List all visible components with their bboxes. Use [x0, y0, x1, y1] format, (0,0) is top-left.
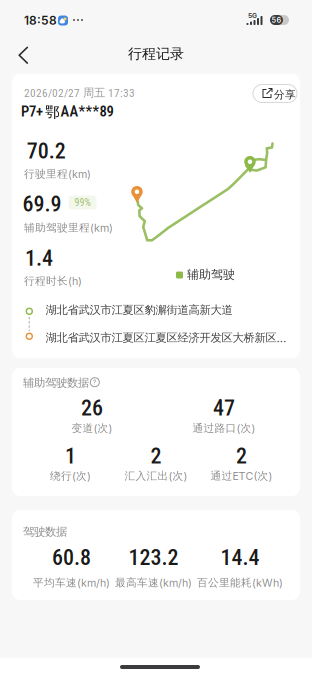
staticText: 辅助驾驶里程(km) — [24, 221, 113, 234]
staticText: 2 — [150, 443, 161, 469]
staticText: 18:58 — [24, 13, 57, 27]
staticText: 60.8 — [52, 545, 91, 570]
staticText: 湖北省武汉市江夏区江夏区经济开发区大桥新区… — [45, 331, 286, 345]
staticText: 行程时长(h) — [24, 274, 82, 288]
staticText: 湖北省武汉市江夏区豹澥街道高新大道 — [45, 303, 232, 317]
staticText: 47 — [213, 395, 235, 421]
staticText: 平均车速(km/h) — [33, 576, 110, 589]
staticText: AA***89 — [60, 103, 113, 120]
button[interactable] — [6, 40, 50, 70]
staticText: 5G — [248, 11, 257, 20]
staticText: 通过路口(次) — [192, 421, 255, 435]
staticText: 70.2 — [27, 138, 66, 164]
staticText: 绕行(次) — [50, 469, 91, 483]
staticText: 2026/02/27 周五 17:33 — [24, 85, 135, 100]
staticText: 最高车速(km/h) — [115, 576, 192, 589]
staticText: 行驶里程(km) — [24, 167, 91, 181]
staticText: 1.4 — [25, 245, 53, 271]
staticText: 鄂 — [45, 103, 60, 121]
staticText: 变道(次) — [71, 421, 112, 435]
staticText: 辅助驾驶 — [187, 267, 235, 282]
staticText: 行程记录 — [128, 45, 184, 63]
staticText: 分享 — [274, 88, 296, 101]
staticText: 辅助驾驶数据 — [23, 375, 89, 390]
staticText: 99% — [74, 197, 90, 208]
staticText: ? — [93, 378, 97, 386]
staticText: 123.2 — [128, 545, 178, 570]
staticText: P7+ — [21, 103, 43, 120]
staticText: 百公里能耗(kWh) — [197, 576, 283, 589]
button[interactable]: 分享 — [0, 0, 312, 676]
staticText: 汇入汇出(次) — [124, 469, 187, 483]
staticText: 56 — [271, 16, 281, 24]
staticText: 26 — [81, 395, 103, 421]
staticText: 69.9 — [22, 191, 61, 217]
staticText: 1 — [65, 443, 76, 469]
staticText: 2 — [236, 443, 247, 469]
staticText: 通过ETC(次) — [210, 469, 272, 483]
staticText: 驾驶数据 — [23, 524, 67, 539]
staticText: 14.4 — [220, 545, 259, 570]
